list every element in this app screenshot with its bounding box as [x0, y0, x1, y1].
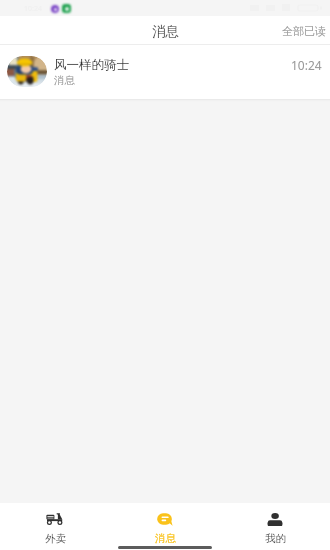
- staticText: 风一样的骑士: [54, 57, 129, 73]
- staticText: 外卖: [45, 532, 66, 545]
- staticText: 全部已读: [282, 24, 326, 38]
- button[interactable]: 我的: [220, 503, 330, 545]
- staticText: 10:24: [291, 57, 322, 73]
- staticText: 消息: [155, 532, 176, 545]
- staticText: 消息: [152, 23, 179, 40]
- button[interactable]: 风一样的骑士: [0, 45, 330, 99]
- staticText: 我的: [265, 532, 286, 545]
- staticText: 消息: [54, 74, 75, 87]
- button[interactable]: 全部已读: [278, 20, 330, 42]
- button[interactable]: 外卖: [0, 503, 110, 545]
- button[interactable]: 消息: [110, 503, 220, 545]
